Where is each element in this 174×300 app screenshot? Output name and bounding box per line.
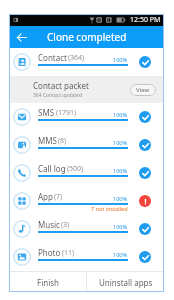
staticText: 100% xyxy=(113,56,128,63)
staticText: Music xyxy=(38,219,60,230)
staticText: View xyxy=(136,86,150,94)
staticText: (1791) xyxy=(56,108,77,118)
staticText: 12:50 PM xyxy=(130,15,161,25)
button[interactable]: Uninstall apps xyxy=(87,272,164,292)
button[interactable]: Music xyxy=(9,215,164,243)
staticText: 7 not installed xyxy=(91,205,128,212)
staticText: (3) xyxy=(61,220,70,230)
staticText: 100% xyxy=(113,223,128,230)
staticText: Call log xyxy=(38,163,66,174)
staticText: 100% xyxy=(113,111,128,118)
staticText: (11) xyxy=(62,248,75,258)
staticText: SMS xyxy=(38,107,55,118)
staticText: Finish xyxy=(37,277,59,288)
staticText: 100% xyxy=(113,251,128,258)
staticText: (7) xyxy=(54,192,63,202)
staticText: 100% xyxy=(113,139,128,146)
button[interactable]: MMS xyxy=(9,131,164,159)
staticText: 364 Contact updated xyxy=(33,92,83,99)
staticText: (8) xyxy=(58,136,67,146)
button[interactable]: Contact xyxy=(9,48,164,76)
staticText: 100% xyxy=(113,195,128,202)
button[interactable]: SMS xyxy=(9,103,164,131)
staticText: Photo xyxy=(38,247,61,258)
button[interactable]: Contact packet xyxy=(9,76,164,103)
staticText: 100% xyxy=(113,167,128,174)
button[interactable]: App xyxy=(9,187,164,215)
button[interactable]: Call log xyxy=(9,159,164,187)
button[interactable]: Finish xyxy=(9,272,86,292)
button[interactable]: Back xyxy=(9,26,33,48)
staticText: (500) xyxy=(67,164,84,174)
staticText: Uninstall apps xyxy=(99,277,153,288)
staticText: App xyxy=(38,191,53,202)
staticText: Contact packet xyxy=(33,80,89,91)
button[interactable]: Photo xyxy=(9,243,164,271)
staticText: Clone completed xyxy=(47,30,127,44)
staticText: Contact xyxy=(38,52,67,63)
staticText: (364) xyxy=(68,53,85,63)
staticText: MMS xyxy=(38,135,57,146)
button[interactable]: View xyxy=(130,84,156,96)
